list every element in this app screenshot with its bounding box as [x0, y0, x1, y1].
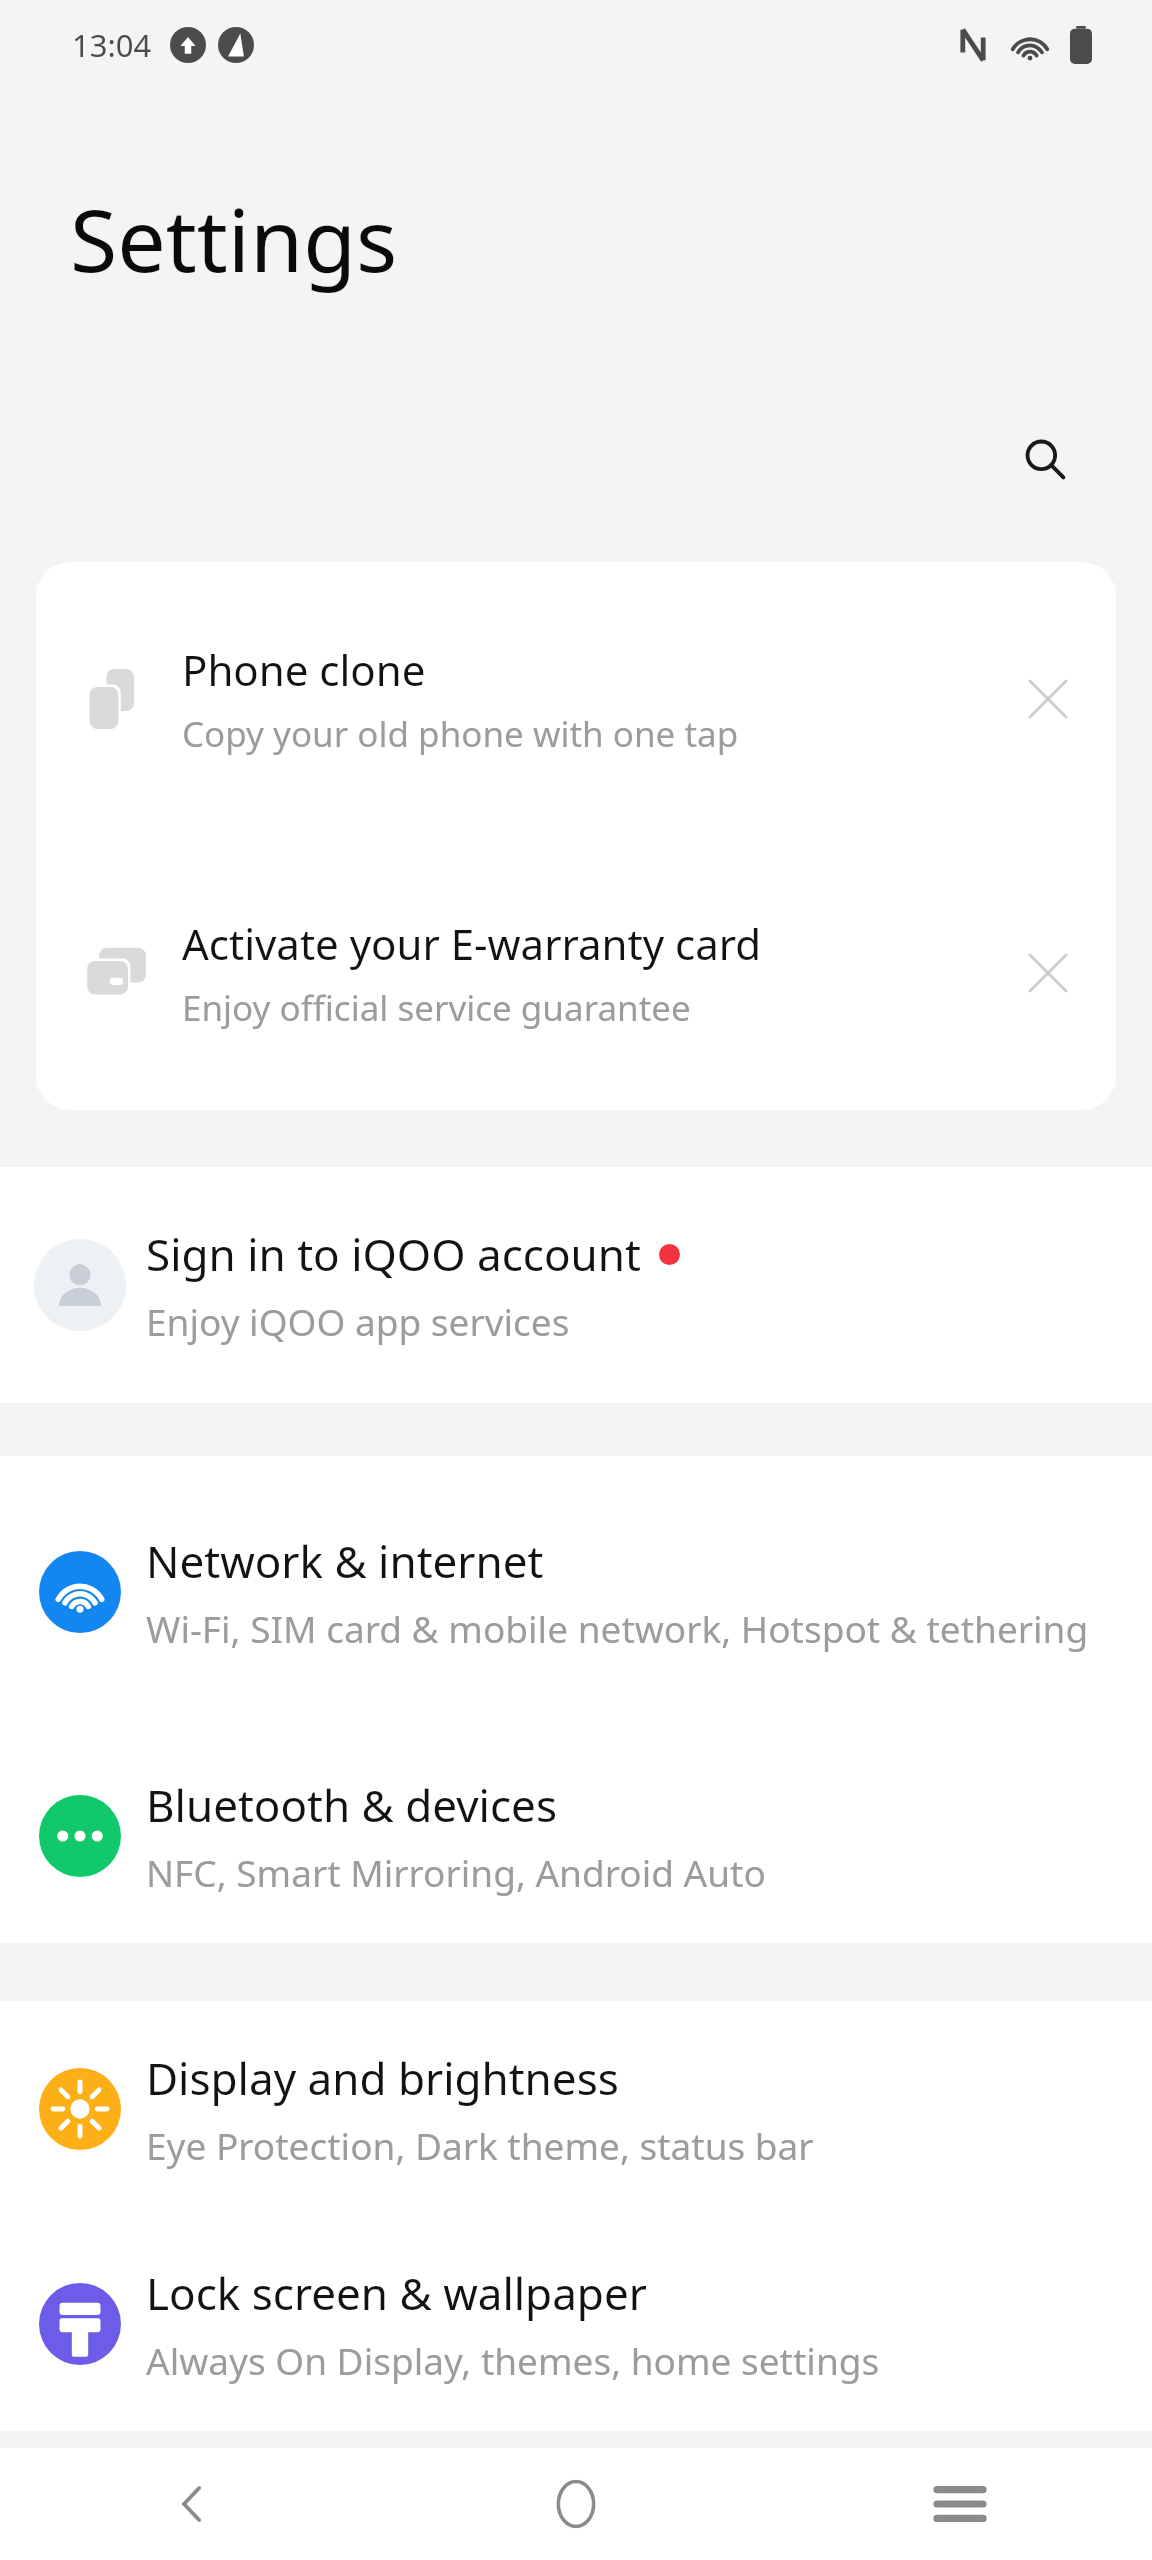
staticText: NFC, Smart Mirroring, Android Auto: [146, 1847, 766, 1897]
button[interactable]: Search: [1006, 420, 1084, 498]
staticText: Network & internet: [146, 1531, 544, 1591]
button[interactable]: Back: [0, 2448, 384, 2560]
staticText: Eye Protection, Dark theme, status bar: [146, 2120, 814, 2170]
staticText: Display and brightness: [146, 2048, 619, 2108]
button[interactable]: Dismiss: [1006, 657, 1090, 741]
staticText: Lock screen & wallpaper: [146, 2263, 647, 2323]
staticText: Always On Display, themes, home settings: [146, 2335, 880, 2385]
staticText: Copy your old phone with one tap: [182, 710, 739, 758]
button[interactable]: Bluetooth & devices: [0, 1728, 1152, 1943]
button[interactable]: Network & internet: [0, 1456, 1152, 1728]
staticText: Activate your E-warranty card: [182, 915, 762, 972]
button[interactable]: Lock screen & wallpaper: [0, 2216, 1152, 2431]
button[interactable]: Home: [384, 2448, 768, 2560]
button[interactable]: Display and brightness: [0, 2001, 1152, 2216]
button[interactable]: Dismiss: [1006, 931, 1090, 1015]
staticText: Phone clone: [182, 641, 426, 698]
staticText: Enjoy official service guarantee: [182, 984, 691, 1032]
button[interactable]: Activate your E-warranty card: [36, 836, 1116, 1110]
staticText: Sign in to iQOO account: [146, 1224, 641, 1284]
staticText: Bluetooth & devices: [146, 1775, 557, 1835]
staticText: Enjoy iQOO app services: [146, 1296, 570, 1346]
button[interactable]: Sign in to iQOO account: [0, 1167, 1152, 1403]
button[interactable]: Recent apps: [768, 2448, 1152, 2560]
staticText: Wi-Fi, SIM card & mobile network, Hotspo…: [146, 1603, 1089, 1653]
button[interactable]: Phone clone: [36, 562, 1116, 836]
staticText: 13:04: [72, 24, 152, 66]
staticText: Settings: [70, 180, 398, 297]
